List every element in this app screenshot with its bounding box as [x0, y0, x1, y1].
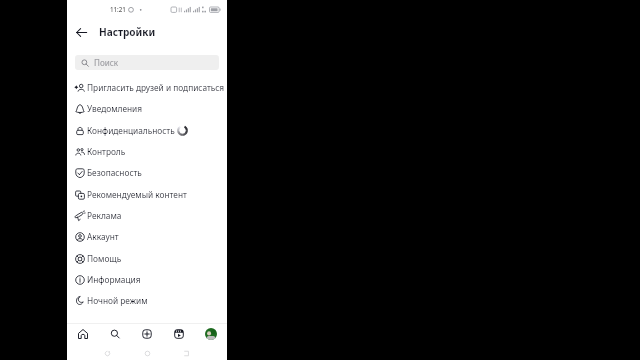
- button[interactable]: Create: [131, 324, 163, 343]
- button[interactable]: Реклама: [67, 205, 227, 226]
- button[interactable]: Ночной режим: [67, 290, 227, 311]
- button[interactable]: Пригласить друзей и подписаться: [67, 77, 227, 98]
- button[interactable]: Back: [70, 21, 92, 43]
- button[interactable]: Inbox: [163, 324, 195, 343]
- staticText: Рекомендуемый контент: [87, 189, 187, 200]
- button[interactable]: Search: [99, 324, 131, 343]
- staticText: Конфиденциальность: [87, 125, 175, 136]
- button[interactable]: Информация: [67, 269, 227, 290]
- staticText: Реклама: [87, 210, 122, 221]
- staticText: Аккаунт: [87, 231, 119, 242]
- staticText: 11:21: [110, 5, 126, 13]
- button[interactable]: Home: [67, 324, 99, 343]
- button[interactable]: Безопасность: [67, 162, 227, 183]
- staticText: Помощь: [87, 253, 122, 264]
- staticText: Информация: [87, 274, 141, 285]
- staticText: Настройки: [99, 25, 156, 39]
- staticText: Уведомления: [87, 103, 143, 114]
- button[interactable]: Помощь: [67, 248, 227, 269]
- button[interactable]: Поиск: [75, 55, 219, 70]
- button[interactable]: Контроль: [67, 141, 227, 162]
- button[interactable]: Profile: [195, 324, 227, 343]
- button[interactable]: Рекомендуемый контент: [67, 184, 227, 205]
- staticText: Безопасность: [87, 167, 142, 178]
- staticText: Ночной режим: [87, 295, 148, 306]
- button[interactable]: Конфиденциальность: [67, 120, 227, 141]
- button[interactable]: Аккаунт: [67, 226, 227, 247]
- button[interactable]: Home: [135, 346, 159, 360]
- button[interactable]: Уведомления: [67, 98, 227, 119]
- staticText: Поиск: [94, 57, 119, 68]
- button[interactable]: Recents: [174, 346, 198, 360]
- staticText: Контроль: [87, 146, 126, 157]
- staticText: Пригласить друзей и подписаться: [87, 82, 225, 93]
- button[interactable]: Back: [95, 346, 119, 360]
